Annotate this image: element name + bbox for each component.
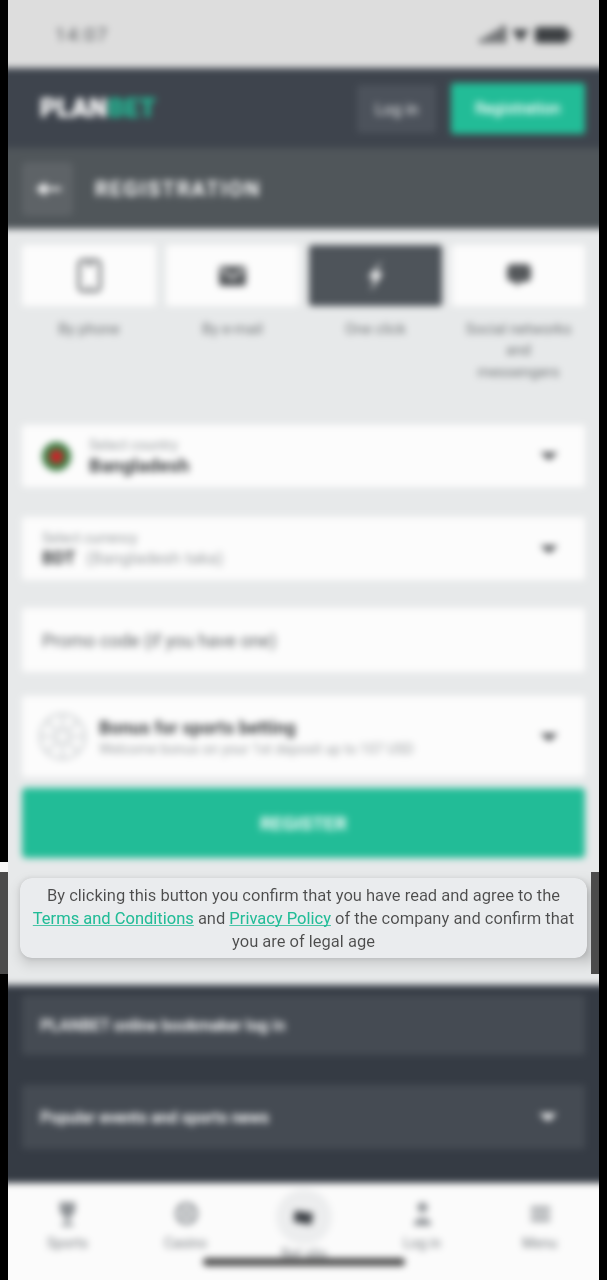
- staticText: One click: [311, 320, 440, 338]
- staticText: Select currency: [42, 530, 138, 546]
- staticText: Registration: [475, 99, 561, 118]
- button[interactable]: Back: [22, 162, 73, 216]
- staticText: Sports: [47, 1235, 89, 1251]
- staticText: REGISTRATION: [95, 177, 262, 202]
- button[interactable]: Bet slip: [245, 1183, 363, 1280]
- staticText: 14:07: [55, 23, 109, 45]
- button[interactable]: Promo code (if you have one): [22, 608, 585, 672]
- button[interactable]: [166, 245, 299, 306]
- button[interactable]: Popular events and sports news: [22, 1085, 585, 1149]
- staticText: Bet slip: [281, 1246, 328, 1262]
- staticText: (Bangladesh taka): [86, 548, 224, 568]
- staticText: Select country: [89, 437, 178, 453]
- staticText: By phone: [24, 320, 154, 338]
- staticText: Menu: [522, 1235, 558, 1251]
- button[interactable]: Menu: [481, 1183, 599, 1280]
- staticText: REGISTER: [260, 812, 347, 834]
- button[interactable]: [452, 245, 585, 306]
- button[interactable]: Sports: [8, 1183, 127, 1280]
- button[interactable]: REGISTER: [22, 788, 585, 858]
- button[interactable]: By clicking this button you confirm that…: [20, 878, 587, 958]
- staticText: Popular events and sports news: [40, 1108, 270, 1127]
- button[interactable]: [22, 245, 156, 306]
- staticText: BDT: [42, 547, 76, 568]
- button[interactable]: PLANBET online bookmaker log in: [22, 995, 585, 1055]
- staticText: Log in: [375, 100, 419, 119]
- button[interactable]: Registration: [451, 83, 585, 134]
- staticText: Social networks and messengers: [454, 320, 583, 381]
- staticText: Welcome bonus on your 1st deposit up to …: [99, 741, 414, 757]
- button[interactable]: Select country: [22, 425, 585, 487]
- staticText: PLANBET online bookmaker log in: [40, 1016, 286, 1035]
- staticText: BET: [108, 93, 156, 123]
- staticText: By clicking this button you confirm that…: [32, 886, 575, 951]
- button[interactable]: Log in: [363, 1183, 481, 1280]
- staticText: Casino: [164, 1235, 208, 1251]
- staticText: PLAN: [40, 93, 108, 123]
- staticText: Promo code (if you have one): [42, 630, 277, 651]
- button[interactable]: Bonus for sports betting: [22, 696, 585, 777]
- button[interactable]: [309, 245, 442, 306]
- staticText: Bonus for sports betting: [99, 717, 296, 738]
- staticText: By e-mail: [168, 320, 297, 338]
- button[interactable]: Select currency: [22, 517, 585, 580]
- staticText: Bangladesh: [89, 454, 190, 476]
- button[interactable]: Casino: [127, 1183, 245, 1280]
- button[interactable]: Log in: [357, 85, 436, 133]
- staticText: Log in: [403, 1235, 441, 1251]
